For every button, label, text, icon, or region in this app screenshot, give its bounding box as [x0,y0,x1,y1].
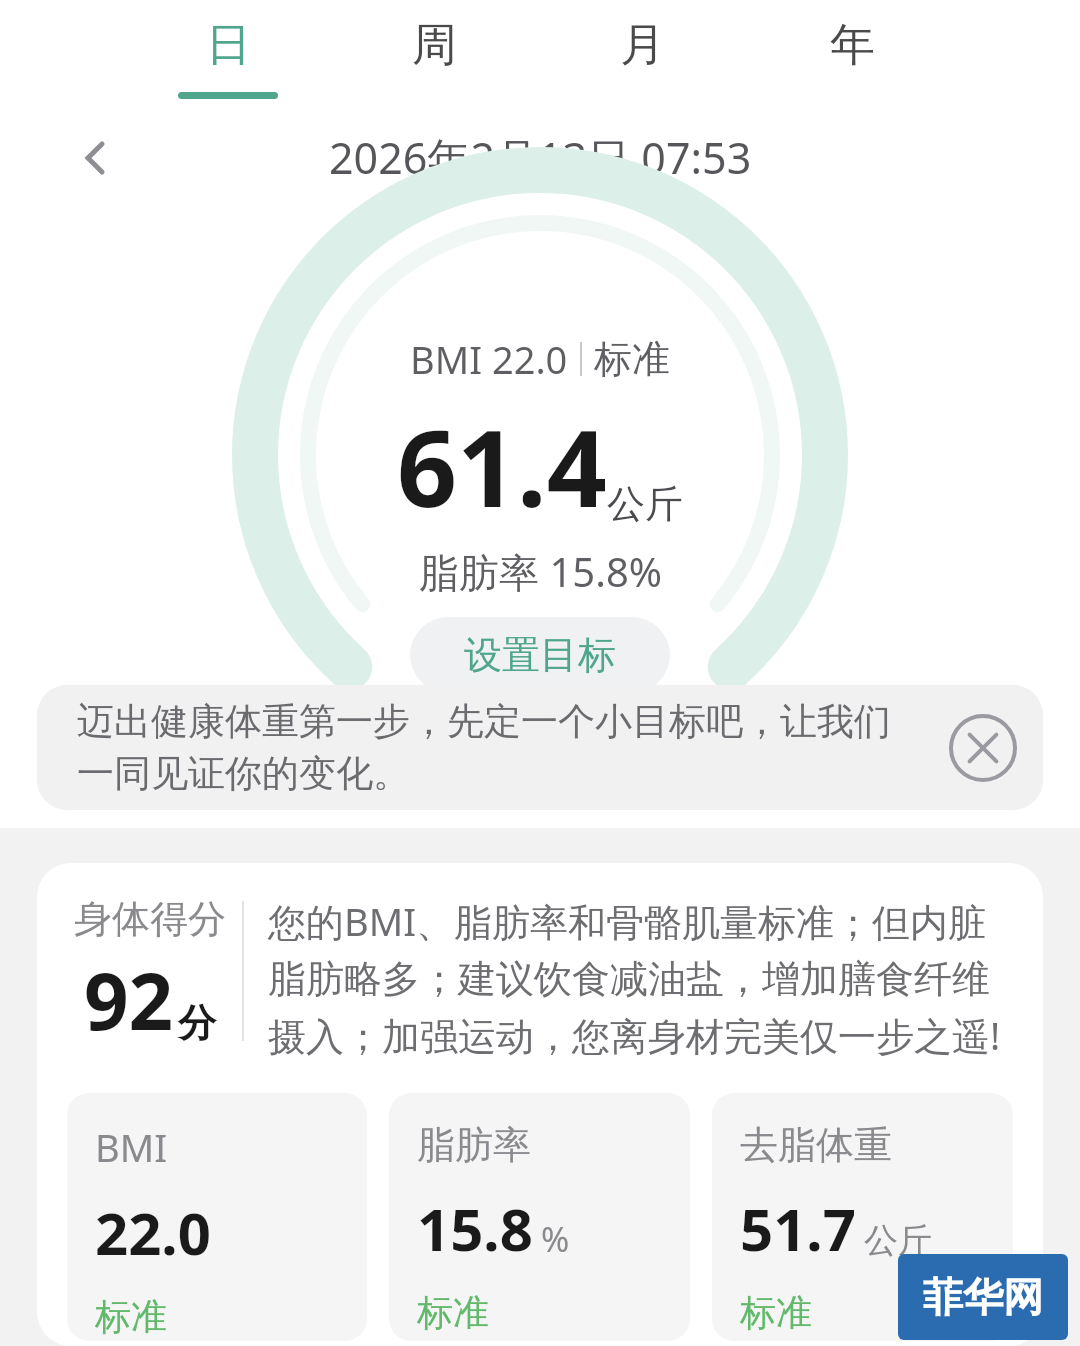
staticText: 身体得分 [74,895,226,943]
staticText: 日 [206,17,251,74]
staticText: 标准 [594,335,670,383]
staticText: 周 [412,17,457,74]
staticText: 92 [84,947,174,1053]
staticText: % [541,1216,570,1262]
staticText: BMI 22.0 [410,333,568,385]
staticText: 标准 [95,1294,167,1339]
button[interactable]: 年 [792,0,912,110]
staticText: 迈出健康体重第一步，先定一个小目标吧，让我们一同见证你的变化。 [77,698,913,797]
button[interactable]: 去脂体重 [712,1093,1013,1341]
staticText: 61.4 [397,395,607,538]
staticText: 分 [178,999,216,1047]
staticText: 22.0 [95,1193,211,1272]
staticText: 菲华网 [923,1272,1043,1322]
staticText: 公斤 [607,480,683,528]
staticText: 公斤 [864,1219,932,1262]
staticText: 标准 [740,1290,812,1335]
button[interactable]: BMI [67,1093,367,1341]
button[interactable]: 月 [582,0,702,110]
button[interactable]: 设置目标 [410,617,670,693]
staticText: 脂肪率 [417,1121,531,1169]
staticText: 标准 [417,1290,489,1335]
staticText: 月 [620,17,665,74]
staticText: 您的BMI、脂肪率和骨骼肌量标准；但内脏脂肪略多；建议饮食减油盐，增加膳食纤维摄… [268,895,1019,1061]
staticText: 脂肪率 15.8% [419,544,662,599]
button[interactable]: Previous day [55,118,135,198]
button[interactable]: 日 [168,0,288,110]
staticText: 15.8 [417,1189,533,1268]
staticText: 2026年2月13日 07:53 [329,128,752,187]
button[interactable]: Close [943,708,1023,788]
staticText: 年 [830,17,875,74]
staticText: BMI [95,1121,168,1173]
button[interactable]: 脂肪率 [389,1093,690,1341]
staticText: 设置目标 [464,631,616,679]
button[interactable]: 周 [374,0,494,110]
staticText: 51.7 [740,1189,856,1268]
staticText: 去脂体重 [740,1121,892,1169]
